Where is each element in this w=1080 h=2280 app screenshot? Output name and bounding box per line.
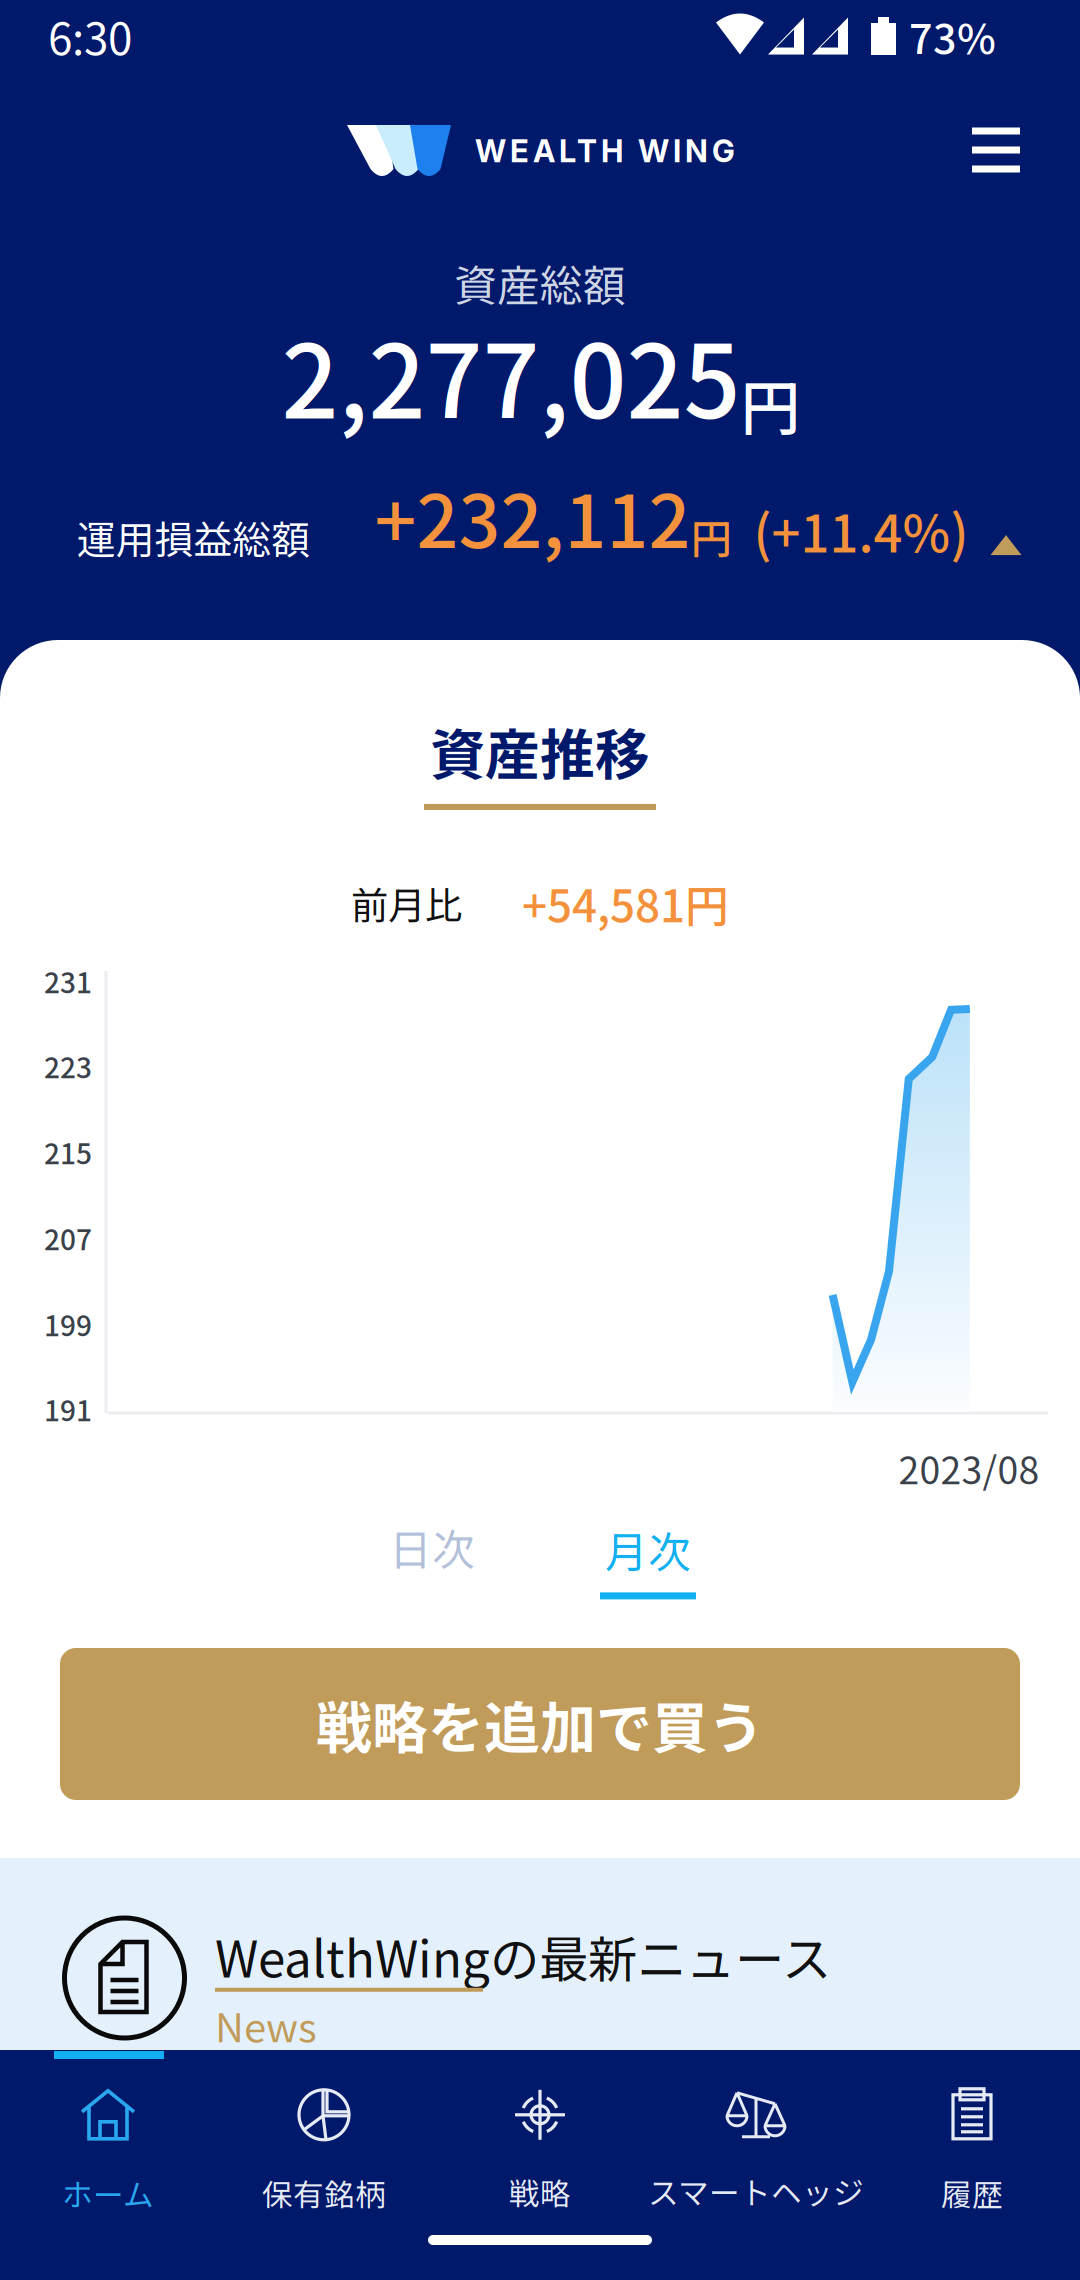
staticText: +54,581円 [522, 871, 729, 935]
staticText: WealthWingの最新ニュース [215, 1920, 831, 1992]
staticText: ホーム [62, 2171, 154, 2215]
button[interactable]: 保有銘柄 [216, 2072, 432, 2232]
staticText: 191 [44, 1389, 92, 1429]
staticText: 2,277,025 [281, 303, 740, 447]
staticText: 資産総額 [454, 252, 626, 314]
staticText: スマートヘッジ [648, 2169, 864, 2213]
button[interactable]: 履歴 [864, 2072, 1080, 2232]
button[interactable]: Menu [946, 102, 1046, 198]
staticText: 223 [44, 1046, 92, 1086]
staticText: 戦略を追加で買う [316, 1683, 764, 1765]
button[interactable]: 戦略を追加で買う [60, 1648, 1020, 1800]
button[interactable]: WealthWingの最新ニュース [0, 1858, 1080, 2050]
button[interactable]: スマートヘッジ [648, 2072, 864, 2232]
staticText: 資産推移 [430, 711, 650, 791]
button[interactable]: 月次 [592, 1509, 704, 1599]
staticText: +232,112 [374, 463, 690, 569]
staticText: 円 [690, 506, 731, 566]
staticText: 日次 [389, 1516, 475, 1578]
staticText: 231 [44, 961, 92, 1001]
staticText: 月次 [605, 1519, 691, 1580]
staticText: 保有銘柄 [262, 2171, 386, 2215]
staticText: 2023/08 [898, 1441, 1039, 1495]
staticText: (+11.4%) [753, 494, 968, 567]
staticText: 215 [44, 1132, 92, 1172]
staticText: 前月比 [351, 876, 462, 930]
button[interactable]: 戦略 [432, 2072, 648, 2232]
staticText: 73% [909, 6, 996, 66]
staticText: 履歴 [941, 2171, 1003, 2215]
staticText: WEALTH WING [475, 132, 735, 169]
staticText: News [215, 1996, 317, 2054]
staticText: 199 [44, 1304, 92, 1344]
staticText: 円 [740, 360, 800, 447]
staticText: 運用損益総額 [76, 509, 310, 565]
button[interactable]: ホーム [0, 2072, 216, 2232]
button[interactable]: 日次 [371, 1506, 493, 1588]
staticText: 207 [44, 1218, 92, 1258]
staticText: 戦略 [509, 2170, 571, 2214]
staticText: 6:30 [48, 4, 132, 68]
